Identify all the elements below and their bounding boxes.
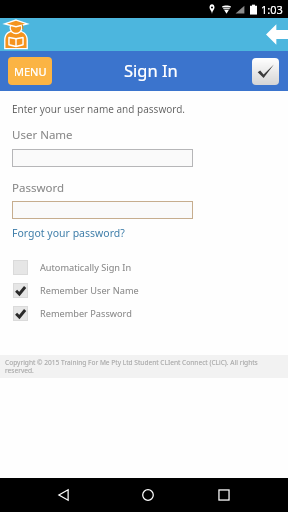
staticText: Sign In bbox=[124, 59, 178, 81]
button[interactable]: Back bbox=[45, 478, 81, 512]
button[interactable]: Remember Password bbox=[0, 306, 288, 321]
button[interactable]: Recents bbox=[206, 478, 242, 512]
staticText: User Name bbox=[12, 127, 73, 143]
staticText: Automatically Sign In bbox=[40, 261, 132, 274]
staticText: Password bbox=[12, 180, 65, 196]
button[interactable]: Submit bbox=[252, 58, 279, 85]
staticText: Copyright © 2015 Training For Me Pty Ltd… bbox=[5, 358, 270, 375]
button[interactable]: Back bbox=[262, 20, 288, 48]
staticText: Remember User Name bbox=[40, 284, 139, 297]
button[interactable] bbox=[12, 201, 193, 219]
staticText: Forgot your password? bbox=[12, 226, 125, 240]
staticText: Enter your user name and password. bbox=[12, 102, 186, 116]
button[interactable]: Remember User Name bbox=[0, 283, 288, 298]
button[interactable]: Forgot your password? bbox=[12, 226, 125, 240]
staticText: 1:03 bbox=[261, 2, 283, 17]
staticText: Remember Password bbox=[40, 307, 132, 320]
button[interactable]: Automatically Sign In bbox=[0, 260, 288, 275]
button[interactable] bbox=[12, 149, 193, 167]
staticText: MENU bbox=[14, 64, 47, 79]
button[interactable]: MENU bbox=[8, 57, 52, 85]
button[interactable]: Home bbox=[130, 478, 166, 512]
